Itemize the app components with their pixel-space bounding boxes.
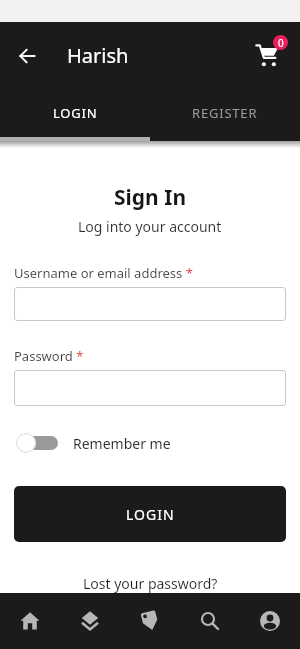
button[interactable]: REGISTER bbox=[150, 89, 300, 137]
staticText: REGISTER bbox=[192, 104, 258, 122]
staticText: LOGIN bbox=[53, 104, 98, 122]
staticText: Log into your account bbox=[78, 217, 222, 236]
button[interactable] bbox=[14, 370, 286, 406]
button[interactable] bbox=[14, 287, 286, 321]
staticText: 0 bbox=[278, 36, 284, 50]
button[interactable] bbox=[180, 593, 240, 649]
button[interactable]: 0 bbox=[243, 31, 293, 81]
staticText: Sign In bbox=[114, 183, 187, 212]
button[interactable]: LOGIN bbox=[14, 486, 286, 542]
staticText: LOGIN bbox=[126, 505, 175, 524]
button[interactable] bbox=[0, 593, 60, 649]
button[interactable] bbox=[240, 593, 300, 649]
button[interactable] bbox=[60, 593, 120, 649]
button[interactable] bbox=[120, 593, 180, 649]
staticText: Remember me bbox=[73, 434, 171, 453]
staticText: Username or email address * bbox=[14, 264, 193, 282]
button[interactable] bbox=[17, 46, 37, 66]
button[interactable]: Lost your password? bbox=[83, 574, 218, 593]
staticText: Harish bbox=[67, 42, 129, 69]
staticText: Password * bbox=[14, 347, 84, 365]
button[interactable] bbox=[16, 433, 58, 453]
button[interactable]: LOGIN bbox=[0, 89, 150, 137]
